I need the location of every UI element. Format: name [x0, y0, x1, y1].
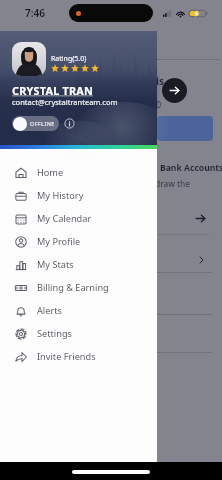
staticText: contact@crystaltranteam.com	[12, 97, 118, 107]
staticText: Billing & Earning	[37, 281, 109, 294]
staticText: is	[156, 74, 165, 88]
staticText: My History	[37, 189, 84, 202]
staticText: Settings	[37, 327, 72, 340]
staticText: Bank Accounts	[160, 162, 222, 174]
button[interactable]: Next	[162, 78, 187, 103]
button[interactable]: My Stats	[0, 253, 157, 276]
staticText: Home	[37, 166, 64, 179]
button[interactable]: My History	[0, 184, 157, 207]
button[interactable]: Home	[0, 161, 157, 184]
staticText: My Profile	[37, 235, 81, 248]
staticText: CRYSTAL TRAN	[12, 83, 94, 98]
staticText: Alerts	[37, 304, 62, 317]
button[interactable]: My Calendar	[0, 207, 157, 230]
staticText: Rating(5.0)	[51, 54, 87, 64]
staticText: 0	[156, 98, 162, 110]
button[interactable]: Invite Friends	[0, 345, 157, 368]
staticText: Invite Friends	[37, 350, 96, 363]
button[interactable]: OFFLINE	[12, 116, 59, 131]
button[interactable]: Alerts	[0, 299, 157, 322]
button[interactable]: Info	[64, 118, 75, 129]
button[interactable]: Billing & Earning	[0, 276, 157, 299]
staticText: My Calendar	[37, 212, 92, 225]
staticText: draw the	[155, 178, 190, 189]
button[interactable]: Settings	[0, 322, 157, 345]
button[interactable]: My Profile	[0, 230, 157, 253]
staticText: OFFLINE	[30, 120, 55, 127]
staticText: 7:46	[25, 6, 45, 20]
staticText: My Stats	[37, 258, 74, 271]
